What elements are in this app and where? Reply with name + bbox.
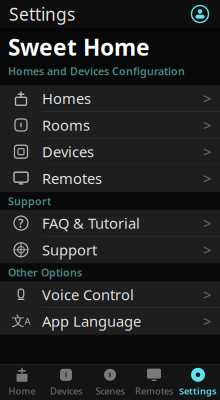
button[interactable]: Home [0,364,44,400]
staticText: > [203,142,211,161]
button[interactable]: Settings [176,364,220,400]
staticText: Rooms [42,115,90,135]
staticText: App Language [42,311,141,331]
staticText: 文 [11,313,24,329]
staticText: > [203,169,211,188]
staticText: Settings [179,385,217,397]
button[interactable]: 文 [0,308,220,335]
button[interactable]: Remotes [0,165,220,192]
staticText: Home [8,385,35,397]
staticText: Devices [42,142,94,161]
staticText: Devices [50,385,82,397]
button[interactable]: Scenes [88,364,132,400]
staticText: Scenes [95,385,124,397]
button[interactable]: Rooms [0,112,220,139]
staticText: Remotes [135,385,173,397]
staticText: A [24,315,30,327]
button[interactable]: Devices [44,364,88,400]
staticText: > [203,115,211,135]
staticText: Support [42,240,97,259]
staticText: Settings [9,2,75,25]
staticText: > [203,285,211,304]
staticText: Voice Control [42,285,134,304]
button[interactable]: Homes [0,85,220,112]
staticText: Homes and Devices Configuration [8,64,185,78]
button[interactable]: Devices [0,139,220,165]
button[interactable]: Remotes [132,364,176,400]
button[interactable]: Voice Control [0,281,220,308]
button[interactable]: ? [0,210,220,237]
staticText: Remotes [42,169,102,188]
staticText: > [203,88,211,108]
button[interactable]: Support [0,237,220,263]
staticText: Other Options [8,265,82,280]
staticText: Support [8,194,51,208]
staticText: > [203,311,211,331]
staticText: FAQ & Tutorial [42,213,140,233]
staticText: ? [18,215,24,231]
staticText: Sweet Home [8,32,150,62]
staticText: > [203,240,211,259]
staticText: Homes [42,88,91,108]
button[interactable]: Account [189,3,211,25]
staticText: > [203,213,211,233]
